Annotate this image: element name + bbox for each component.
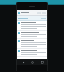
button[interactable] [17, 21, 47, 31]
button[interactable] [17, 49, 47, 57]
button[interactable] [17, 39, 47, 49]
button[interactable]: Recent apps [39, 59, 45, 65]
button[interactable]: Home [29, 59, 35, 65]
button[interactable] [17, 16, 47, 20]
button[interactable]: Search [17, 10, 47, 15]
button[interactable]: Back [20, 59, 26, 65]
button[interactable] [17, 31, 47, 39]
